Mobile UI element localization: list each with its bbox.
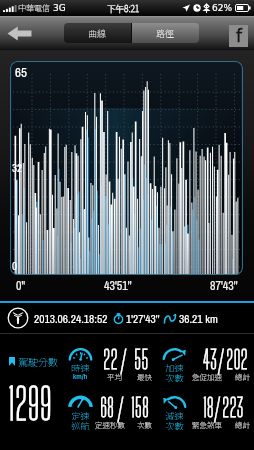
staticText: 最快 — [137, 371, 152, 382]
button[interactable]: 時速 — [67, 348, 94, 388]
button[interactable]: 路徑 — [132, 23, 199, 43]
staticText: km/h — [73, 371, 88, 382]
staticText: 32 — [12, 161, 23, 176]
staticText: 202 — [226, 345, 248, 374]
staticText: 定速秒數 — [95, 419, 125, 430]
staticText: 次數 — [165, 419, 185, 430]
staticText: 43/ — [203, 345, 225, 374]
staticText: 223 — [222, 393, 244, 422]
staticText: f — [236, 26, 242, 46]
button[interactable]: 加速 — [161, 348, 188, 388]
button[interactable]: Back — [4, 20, 34, 46]
staticText: 次數 — [137, 419, 152, 430]
button[interactable]: Share on Facebook — [229, 25, 248, 47]
staticText: 定速 — [71, 409, 91, 420]
staticText: / — [120, 345, 127, 374]
staticText: 36.21 km — [179, 311, 218, 326]
staticText: 0'' — [16, 278, 26, 294]
staticText: 65 — [15, 64, 27, 82]
staticText: 22 — [103, 345, 118, 374]
staticText: 18/ — [203, 393, 221, 422]
staticText: 43'51'' — [104, 278, 132, 294]
staticText: 平均 — [107, 371, 122, 382]
staticText: 0 — [12, 259, 18, 274]
staticText: 曲線 — [88, 27, 107, 40]
staticText: 55 — [134, 345, 149, 374]
button[interactable]: 減速 — [161, 396, 188, 436]
staticText: 急促加速 — [192, 371, 222, 382]
button[interactable]: 曲線 — [64, 23, 131, 43]
staticText: 68 — [100, 393, 114, 422]
staticText: 158 — [131, 393, 149, 422]
staticText: 減速 — [165, 409, 185, 420]
staticText: 1299 — [8, 379, 53, 429]
staticText: 3G — [53, 3, 66, 13]
staticText: 路徑 — [156, 27, 175, 40]
staticText: / — [117, 393, 124, 422]
staticText: 87'43'' — [210, 278, 238, 294]
staticText: 時速 — [71, 361, 91, 372]
staticText: 駕駛分數 — [18, 354, 58, 368]
staticText: 總計 — [235, 371, 250, 382]
staticText: 總計 — [235, 419, 250, 430]
staticText: 下午8:21 — [107, 2, 140, 14]
staticText: 1'27'43'' — [126, 311, 160, 326]
staticText: 巡航 — [71, 419, 91, 430]
staticText: 次數 — [165, 371, 185, 382]
button[interactable]: 定速 — [67, 396, 94, 436]
staticText: 加速 — [165, 361, 185, 372]
button[interactable]: 駕駛分數 — [9, 354, 58, 368]
staticText: 中華電信 — [18, 2, 50, 14]
staticText: 2013.06.24.18:52 — [34, 311, 108, 326]
staticText: 緊急煞車 — [192, 419, 222, 430]
staticText: 62% — [212, 3, 233, 13]
